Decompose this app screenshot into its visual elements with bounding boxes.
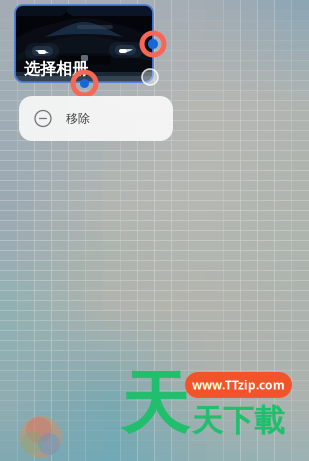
staticText: 天 <box>121 362 189 445</box>
button[interactable]: 移除 <box>19 96 173 141</box>
staticText: 选择相册 <box>24 59 88 79</box>
staticText: 天下載 <box>192 402 285 440</box>
staticText: 移除 <box>66 111 90 126</box>
staticText: www.TTzip.com <box>192 377 285 393</box>
